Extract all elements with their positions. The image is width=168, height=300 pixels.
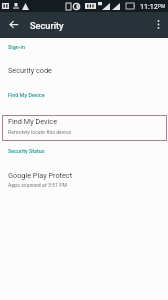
button[interactable]: Security code bbox=[0, 62, 168, 79]
staticText: Security code bbox=[8, 66, 52, 75]
button[interactable]: Google Play Protect bbox=[0, 169, 168, 195]
button[interactable]: Back bbox=[3, 12, 24, 38]
staticText: 11:12 bbox=[140, 2, 158, 10]
staticText: Security Status bbox=[8, 148, 45, 154]
button[interactable]: More options bbox=[149, 11, 168, 37]
staticText: PM bbox=[158, 4, 166, 10]
staticText: Find My Device bbox=[8, 92, 45, 98]
button[interactable]: Find My Device bbox=[2, 115, 167, 141]
staticText: Sign-in bbox=[8, 44, 25, 50]
staticText: Remotely locate this device bbox=[8, 129, 72, 135]
staticText: Security bbox=[30, 20, 64, 31]
staticText: Apps scanned at 3:51 PM bbox=[8, 182, 67, 188]
staticText: Find My Device bbox=[8, 117, 58, 126]
staticText: Google Play Protect bbox=[8, 171, 73, 180]
